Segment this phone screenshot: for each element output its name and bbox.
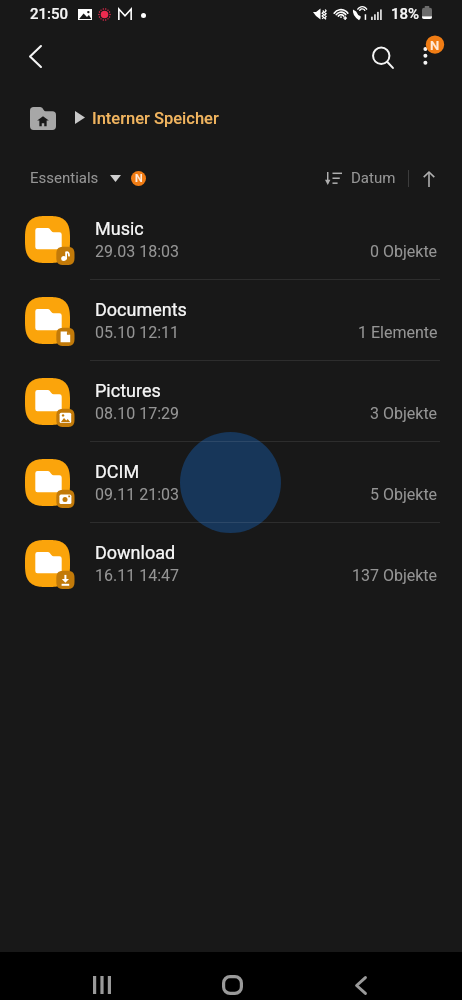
button[interactable]: Music: [0, 199, 462, 280]
button[interactable]: Search: [359, 34, 407, 82]
staticText: Datum: [351, 169, 396, 187]
staticText: Pictures: [95, 380, 161, 401]
button[interactable]: Datum: [319, 164, 402, 192]
button[interactable]: Recent apps: [70, 962, 134, 1000]
staticText: 09.11 21:03: [95, 485, 179, 504]
button[interactable]: Essentials: [24, 164, 152, 192]
staticText: Music: [95, 218, 144, 239]
staticText: 5 Objekte: [370, 485, 438, 504]
button[interactable]: More options: [402, 30, 450, 78]
button[interactable]: Home: [200, 962, 264, 1000]
button[interactable]: Download: [0, 523, 462, 604]
staticText: N: [135, 172, 143, 185]
staticText: Download: [95, 542, 176, 563]
staticText: 1 Elemente: [358, 323, 438, 342]
staticText: 05.10 12:11: [95, 323, 179, 342]
staticText: Interner Speicher: [92, 109, 219, 128]
button[interactable]: Interner Speicher: [92, 107, 219, 130]
staticText: N: [430, 38, 440, 53]
staticText: Documents: [95, 299, 187, 320]
staticText: 08.10 17:29: [95, 404, 179, 423]
button[interactable]: Documents: [0, 280, 462, 361]
button[interactable]: Back: [329, 962, 393, 1000]
staticText: 18%: [391, 5, 420, 23]
staticText: Essentials: [30, 169, 99, 187]
staticText: 16.11 14:47: [95, 566, 179, 585]
staticText: 29.03 18:03: [95, 242, 179, 261]
button[interactable]: Internal storage root: [22, 103, 64, 134]
button[interactable]: DCIM: [0, 442, 462, 523]
staticText: DCIM: [95, 461, 140, 482]
button[interactable]: Pictures: [0, 361, 462, 442]
staticText: 21:50: [30, 5, 69, 23]
staticText: 3 Objekte: [370, 404, 438, 423]
button[interactable]: Sort ascending: [412, 162, 446, 196]
staticText: 0 Objekte: [370, 242, 438, 261]
button[interactable]: Back: [11, 32, 59, 80]
staticText: 137 Objekte: [352, 566, 438, 585]
